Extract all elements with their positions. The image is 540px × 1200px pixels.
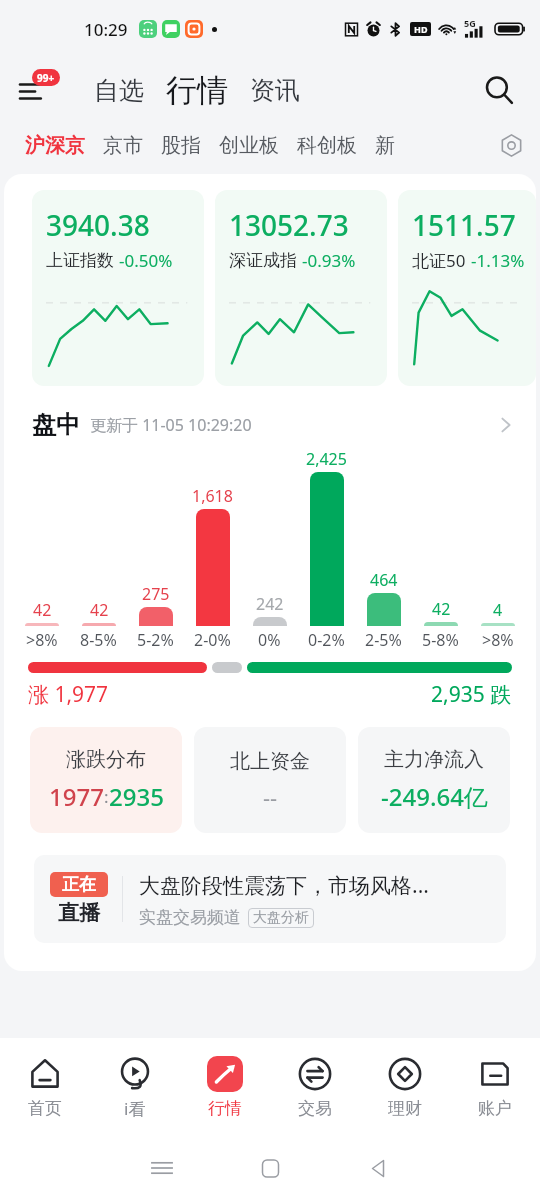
button[interactable]: 资讯 bbox=[244, 69, 306, 112]
staticText: -- bbox=[263, 782, 278, 812]
staticText: 北上资金 bbox=[230, 749, 310, 774]
button[interactable]: 股指 bbox=[152, 122, 210, 168]
staticText: 直播 bbox=[58, 900, 100, 926]
button[interactable]: 京市 bbox=[94, 122, 152, 168]
staticText: 4 bbox=[493, 599, 503, 621]
staticText: 5G bbox=[464, 17, 476, 29]
staticText: 上证指数 bbox=[46, 250, 114, 271]
staticText: 3940.38 bbox=[46, 206, 150, 244]
staticText: 沪深京 bbox=[25, 133, 85, 158]
staticText: 242 bbox=[256, 593, 284, 615]
staticText: 科创板 bbox=[297, 133, 357, 158]
button[interactable]: 主力净流入 bbox=[358, 727, 510, 833]
button[interactable]: Menu bbox=[20, 69, 74, 111]
staticText: 账户 bbox=[478, 1098, 512, 1119]
staticText: 42 bbox=[432, 598, 451, 620]
staticText: -249.64亿 bbox=[381, 780, 488, 813]
staticText: 正在 bbox=[62, 874, 96, 895]
staticText: >8% bbox=[26, 629, 58, 651]
button[interactable]: Home bbox=[216, 1136, 324, 1200]
button[interactable]: 科创板 bbox=[288, 122, 366, 168]
staticText: 大盘阶段性震荡下，市场风格... bbox=[139, 871, 429, 900]
staticText: -0.93% bbox=[302, 249, 356, 272]
button[interactable]: 行情 bbox=[160, 69, 234, 112]
staticText: >8% bbox=[482, 629, 514, 651]
staticText: 2-5% bbox=[365, 629, 402, 651]
button[interactable]: 新 bbox=[366, 122, 404, 168]
staticText: 1511.57 bbox=[412, 206, 516, 244]
button[interactable]: 涨跌分布 bbox=[30, 727, 182, 833]
staticText: 更新于 11-05 10:29:20 bbox=[90, 414, 252, 436]
staticText: 理财 bbox=[388, 1098, 422, 1119]
staticText: 42 bbox=[90, 599, 109, 621]
button[interactable]: 交易 bbox=[270, 1038, 360, 1136]
button[interactable]: 自选 bbox=[88, 69, 150, 112]
staticText: 涨跌分布 bbox=[66, 747, 146, 772]
staticText: 行情 bbox=[166, 71, 228, 110]
staticText: 盘中 bbox=[32, 410, 80, 440]
button[interactable]: 1511.57 bbox=[398, 190, 536, 386]
button[interactable]: Recents bbox=[108, 1136, 216, 1200]
staticText: 1977 bbox=[49, 780, 104, 813]
staticText: 股指 bbox=[161, 133, 201, 158]
staticText: 深证成指 bbox=[229, 250, 297, 271]
staticText: 2,935 跌 bbox=[431, 680, 512, 709]
staticText: 涨 1,977 bbox=[28, 680, 109, 709]
button[interactable]: Search bbox=[476, 67, 522, 113]
button[interactable]: 首页 bbox=[0, 1038, 90, 1136]
button[interactable]: Back bbox=[324, 1136, 432, 1200]
staticText: 2-0% bbox=[194, 629, 231, 651]
button[interactable]: 13052.73 bbox=[215, 190, 387, 386]
button[interactable]: 正在 bbox=[34, 855, 506, 943]
staticText: : bbox=[104, 785, 109, 808]
staticText: 5-8% bbox=[422, 629, 459, 651]
staticText: 京市 bbox=[103, 133, 143, 158]
button[interactable]: 行情 bbox=[180, 1038, 270, 1136]
staticText: 北证50 bbox=[412, 249, 466, 272]
button[interactable]: 北上资金 bbox=[194, 727, 346, 833]
staticText: 自选 bbox=[94, 75, 144, 106]
staticText: 行情 bbox=[208, 1098, 242, 1119]
button[interactable]: 盘中 bbox=[4, 402, 536, 448]
staticText: 10:29 bbox=[84, 18, 128, 41]
staticText: -1.13% bbox=[471, 249, 525, 272]
staticText: -0.50% bbox=[119, 249, 173, 272]
staticText: 5-2% bbox=[137, 629, 174, 651]
staticText: 8-5% bbox=[80, 629, 117, 651]
staticText: 2935 bbox=[109, 780, 164, 813]
staticText: 首页 bbox=[28, 1098, 62, 1119]
button[interactable]: i看 bbox=[90, 1038, 180, 1136]
button[interactable]: 账户 bbox=[450, 1038, 540, 1136]
button[interactable]: Settings bbox=[492, 126, 530, 164]
staticText: 13052.73 bbox=[229, 206, 349, 244]
staticText: 大盘分析 bbox=[253, 909, 309, 927]
staticText: 1,618 bbox=[192, 485, 233, 507]
button[interactable]: 理财 bbox=[360, 1038, 450, 1136]
staticText: 42 bbox=[33, 599, 52, 621]
staticText: 0-2% bbox=[308, 629, 345, 651]
staticText: 实盘交易频道 bbox=[139, 907, 241, 928]
staticText: 0% bbox=[258, 629, 281, 651]
button[interactable]: 创业板 bbox=[210, 122, 288, 168]
staticText: 交易 bbox=[298, 1098, 332, 1119]
button[interactable]: 3940.38 bbox=[32, 190, 204, 386]
staticText: 创业板 bbox=[219, 133, 279, 158]
staticText: 2,425 bbox=[306, 448, 347, 470]
staticText: 新 bbox=[375, 133, 395, 158]
staticText: HD bbox=[414, 23, 428, 35]
staticText: 主力净流入 bbox=[384, 747, 484, 772]
button[interactable]: 沪深京 bbox=[16, 122, 94, 168]
staticText: i看 bbox=[124, 1097, 146, 1120]
staticText: 275 bbox=[142, 583, 170, 605]
staticText: 99+ bbox=[37, 71, 55, 85]
staticText: 464 bbox=[370, 569, 398, 591]
staticText: 资讯 bbox=[250, 75, 300, 106]
